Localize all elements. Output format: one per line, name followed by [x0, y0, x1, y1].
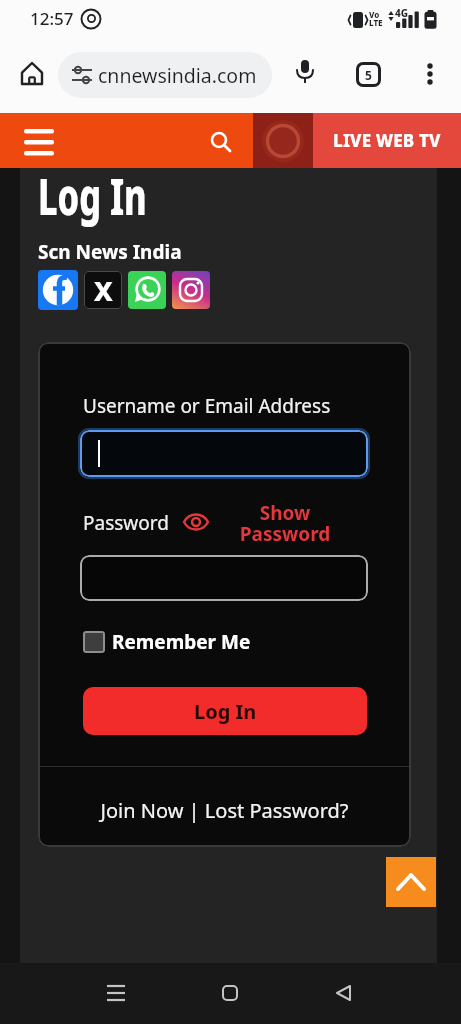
staticText: Vo LTE: [369, 9, 383, 28]
button[interactable]: 5: [356, 62, 381, 87]
button[interactable]: [80, 430, 368, 477]
button[interactable]: [18, 60, 46, 88]
staticText: Log In: [38, 163, 147, 230]
button[interactable]: [183, 512, 209, 532]
staticText: X: [94, 272, 113, 309]
button[interactable]: [172, 271, 210, 309]
button[interactable]: [253, 113, 313, 168]
button[interactable]: cnnewsindia.com: [58, 52, 272, 98]
button[interactable]: [386, 857, 436, 907]
button[interactable]: Show Password: [220, 500, 350, 547]
staticText: Username or Email Address: [83, 393, 331, 419]
staticText: Scn News India: [38, 239, 182, 265]
button[interactable]: [222, 985, 238, 1001]
staticText: 12:57: [30, 7, 74, 30]
button[interactable]: Join Now | Lost Password?: [38, 797, 411, 824]
button[interactable]: X: [84, 271, 122, 309]
staticText: cnnewsindia.com: [98, 62, 257, 89]
button[interactable]: [107, 985, 125, 1001]
staticText: Remember Me: [112, 629, 251, 655]
button[interactable]: [80, 555, 368, 601]
button[interactable]: [24, 129, 54, 156]
button[interactable]: Log In: [83, 687, 367, 735]
staticText: 5: [365, 67, 372, 83]
staticText: 4G: [395, 6, 409, 20]
button[interactable]: [128, 271, 166, 309]
button[interactable]: [336, 985, 351, 1001]
button[interactable]: [422, 62, 438, 86]
staticText: LIVE WEB TV: [333, 129, 441, 152]
button[interactable]: Remember Me: [83, 629, 251, 655]
button[interactable]: [208, 129, 234, 155]
button[interactable]: [292, 59, 320, 87]
button[interactable]: LIVE WEB TV: [313, 113, 461, 168]
staticText: Password: [83, 510, 169, 536]
button[interactable]: [38, 270, 78, 310]
staticText: Log In: [194, 698, 257, 725]
